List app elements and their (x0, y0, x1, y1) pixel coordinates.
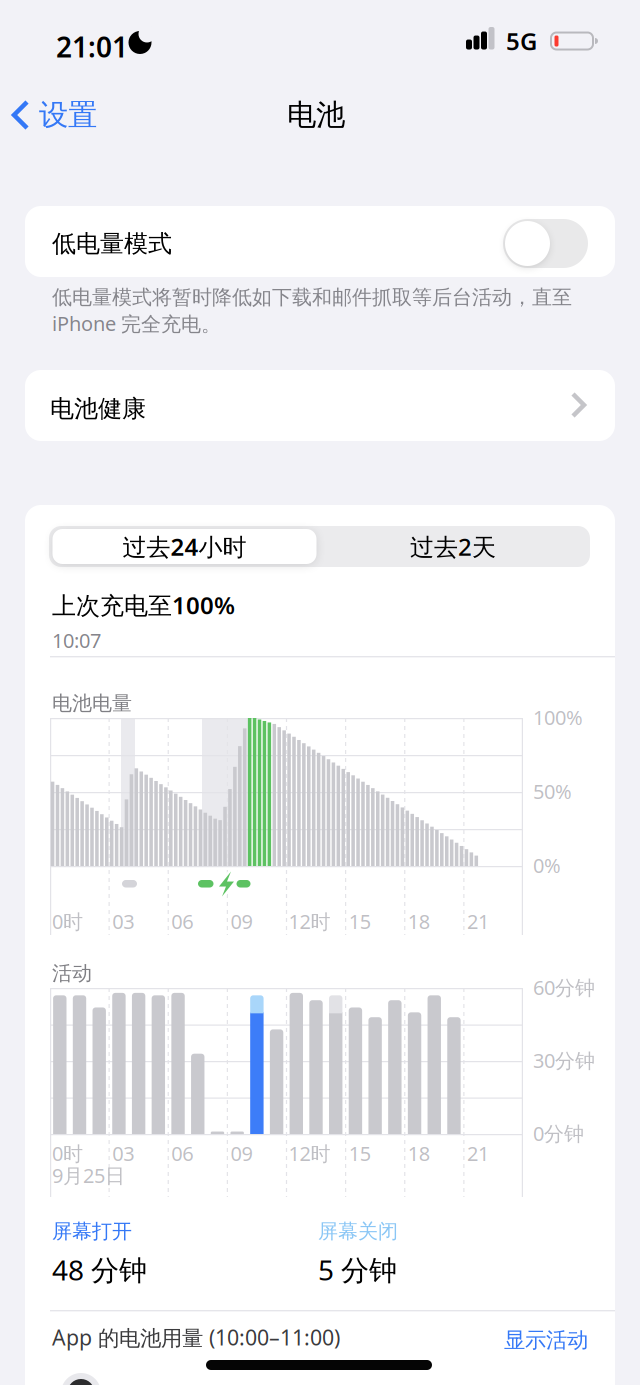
staticText: 0分钟 (533, 1120, 584, 1147)
staticText: 21:01 (56, 28, 128, 65)
staticText: 屏幕关闭 (318, 1219, 398, 1244)
staticText: 18 (408, 1140, 430, 1167)
button[interactable]: 电池健康 (25, 370, 615, 441)
staticText: 5 分钟 (318, 1251, 397, 1288)
staticText: 48 分钟 (52, 1251, 147, 1288)
staticText: 09 (230, 908, 252, 935)
staticText: 上次充电至100% (52, 589, 235, 621)
staticText: 12时 (288, 908, 330, 935)
staticText: 电池健康 (50, 394, 146, 423)
staticText: 屏幕打开 (52, 1219, 132, 1244)
staticText: 06 (171, 908, 193, 935)
staticText: 18 (408, 908, 430, 935)
staticText: 60分钟 (533, 974, 595, 1001)
staticText: 15 (349, 1140, 371, 1167)
staticText: 9月25日 (52, 1162, 125, 1189)
staticText: 10:07 (52, 627, 101, 654)
staticText: 06 (171, 1140, 193, 1167)
staticText: 100% (533, 704, 583, 731)
button[interactable]: 设置 (12, 97, 97, 133)
staticText: 30分钟 (533, 1047, 595, 1074)
staticText: 0时 (52, 908, 83, 935)
staticText: 12时 (288, 1140, 330, 1167)
staticText: 03 (112, 1140, 134, 1167)
staticText: 5G (506, 25, 537, 57)
staticText: 低电量模式 (52, 229, 172, 258)
staticText: 电池电量 (52, 691, 132, 716)
staticText: 21 (467, 1140, 489, 1167)
staticText: iPhone 完全充电。 (52, 310, 221, 337)
staticText: 低电量模式将暂时降低如下载和邮件抓取等后台活动，直至 (52, 285, 572, 310)
staticText: 显示活动 (504, 1327, 588, 1353)
staticText: 0% (533, 852, 561, 879)
staticText: 过去2天 (410, 531, 496, 562)
staticText: 15 (349, 908, 371, 935)
button[interactable]: 低电量模式 (503, 219, 588, 268)
staticText: 09 (230, 1140, 252, 1167)
staticText: 0时 (52, 1140, 83, 1167)
staticText: 电池 (287, 97, 345, 133)
button[interactable]: 显示活动 (504, 1327, 588, 1353)
staticText: 活动 (52, 961, 92, 986)
staticText: 设置 (39, 97, 97, 133)
staticText: 03 (112, 908, 134, 935)
button[interactable]: 过去2天 (318, 529, 588, 564)
staticText: 21 (467, 908, 489, 935)
staticText: 过去24小时 (122, 531, 246, 562)
staticText: App 的电池用量 (10:00–11:00) (52, 1323, 340, 1351)
staticText: 50% (533, 778, 572, 805)
button[interactable]: 过去24小时 (52, 529, 316, 564)
